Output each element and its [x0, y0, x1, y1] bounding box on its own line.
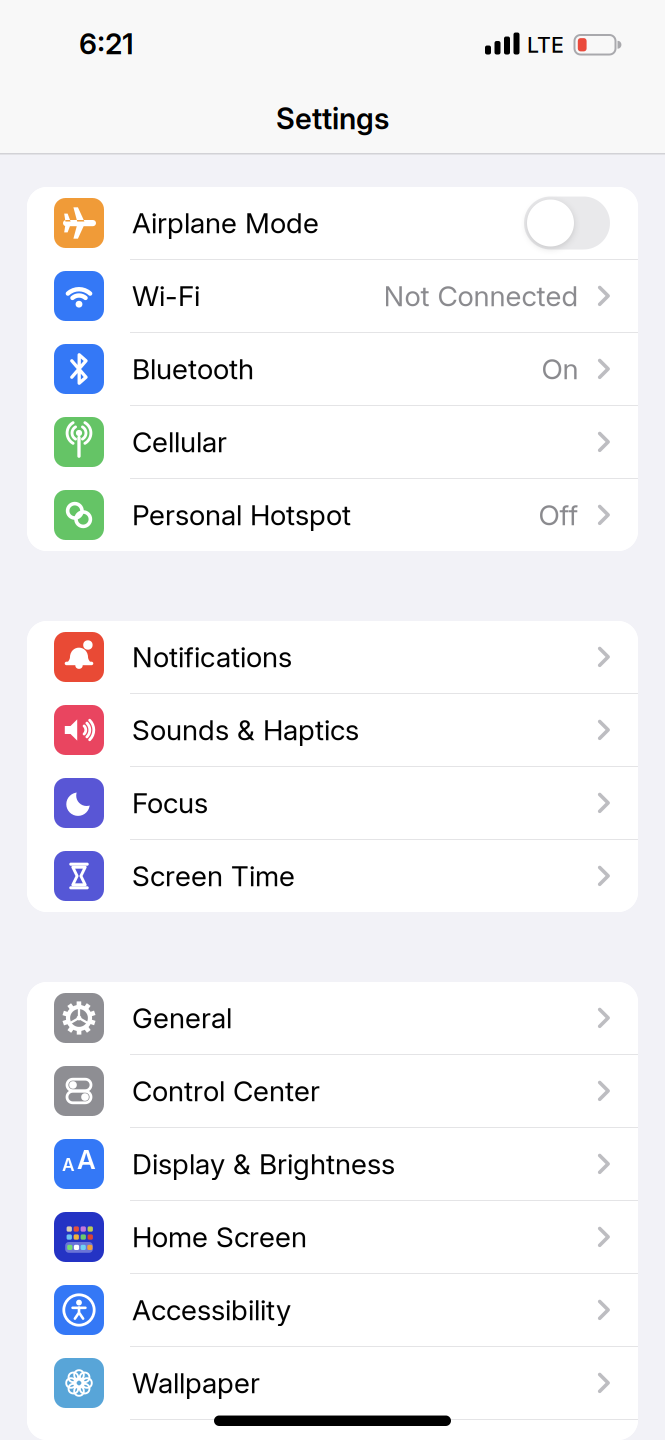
button[interactable]: Home Screen [27, 1201, 638, 1273]
staticText: A [62, 1154, 75, 1175]
staticText: Screen Time [132, 859, 295, 893]
staticText: Airplane Mode [132, 206, 319, 240]
button[interactable]: Bluetooth [27, 333, 638, 405]
staticText: Cellular [132, 425, 227, 459]
staticText: Wallpaper [132, 1366, 260, 1400]
button[interactable]: Wallpaper [27, 1347, 638, 1419]
staticText: LTE [527, 32, 564, 58]
staticText: On [541, 352, 578, 386]
button[interactable]: Notifications [27, 621, 638, 693]
staticText: Bluetooth [132, 352, 254, 386]
button[interactable]: Control Center [27, 1055, 638, 1127]
staticText: Home Screen [132, 1220, 307, 1254]
staticText: Accessibility [132, 1293, 291, 1327]
button[interactable]: Cellular [27, 406, 638, 478]
button[interactable]: Wi-Fi [27, 260, 638, 332]
staticText: Personal Hotspot [132, 498, 351, 532]
staticText: 6:21 [79, 26, 134, 61]
staticText: Control Center [132, 1074, 320, 1108]
button[interactable]: Accessibility [27, 1274, 638, 1346]
button[interactable]: Personal Hotspot [27, 479, 638, 551]
staticText: Wi-Fi [132, 279, 200, 313]
staticText: Not Connected [383, 279, 578, 313]
button[interactable]: Focus [27, 767, 638, 839]
staticText: Off [538, 498, 578, 532]
staticText: Focus [132, 786, 208, 820]
staticText: General [132, 1001, 232, 1035]
staticText: Display & Brightness [132, 1147, 395, 1181]
staticText: Settings [276, 101, 389, 136]
staticText: Sounds & Haptics [132, 713, 359, 747]
button[interactable]: General [27, 982, 638, 1054]
button[interactable]: Airplane Mode [27, 187, 638, 259]
button[interactable]: Sounds & Haptics [27, 694, 638, 766]
staticText: Notifications [132, 640, 292, 674]
staticText: A [77, 1144, 96, 1175]
button[interactable]: A [27, 1128, 638, 1200]
button[interactable]: Screen Time [27, 840, 638, 912]
